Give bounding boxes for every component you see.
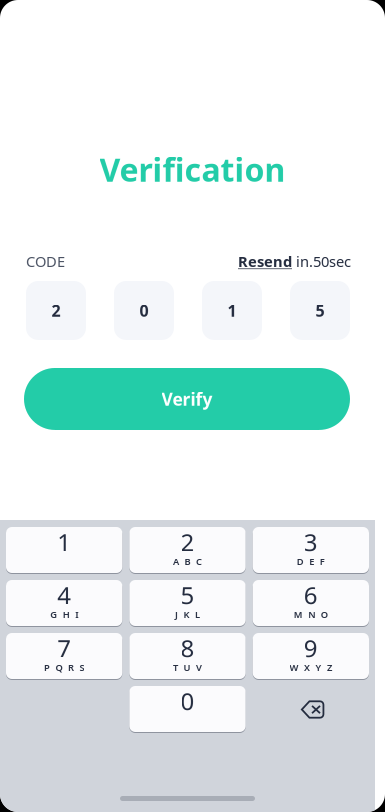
staticText: 0 [180, 685, 194, 717]
staticText: Verify [161, 387, 212, 410]
button[interactable]: 8 [129, 633, 246, 680]
staticText: 9 [304, 632, 318, 664]
staticText: 1 [227, 300, 236, 321]
staticText: 5 [180, 579, 194, 611]
staticText: ABC [173, 555, 202, 568]
staticText: 8 [180, 632, 194, 664]
staticText: MNO [294, 608, 328, 621]
staticText: 6 [304, 579, 318, 611]
button[interactable]: Verify [24, 368, 350, 430]
staticText: 5 [315, 300, 324, 321]
button[interactable]: 2 [129, 527, 246, 574]
staticText: JKL [175, 608, 200, 621]
staticText: DEF [297, 555, 325, 568]
staticText: 3 [304, 526, 318, 558]
button[interactable]: 7 [6, 633, 122, 680]
staticText: WXYZ [290, 661, 332, 674]
staticText: Verification [99, 148, 285, 190]
staticText: TUV [173, 661, 202, 674]
button[interactable]: Delete [253, 686, 369, 733]
staticText: Resend [238, 251, 292, 271]
button[interactable]: 0 [129, 686, 246, 733]
staticText: 2 [180, 526, 194, 558]
staticText: GHI [50, 608, 78, 621]
staticText: 1 [57, 526, 71, 558]
staticText: PQRS [44, 661, 84, 674]
button[interactable]: 6 [253, 580, 369, 627]
staticText: 2 [51, 300, 60, 321]
staticText: 7 [57, 632, 71, 664]
button[interactable]: 4 [6, 580, 122, 627]
button[interactable]: 1 [6, 527, 122, 574]
button[interactable]: 5 [129, 580, 246, 627]
staticText: CODE [26, 251, 65, 271]
staticText: in.50sec [292, 251, 351, 271]
staticText: 0 [139, 300, 148, 321]
staticText: 4 [57, 579, 71, 611]
button[interactable]: 9 [253, 633, 369, 680]
button[interactable]: 3 [253, 527, 369, 574]
